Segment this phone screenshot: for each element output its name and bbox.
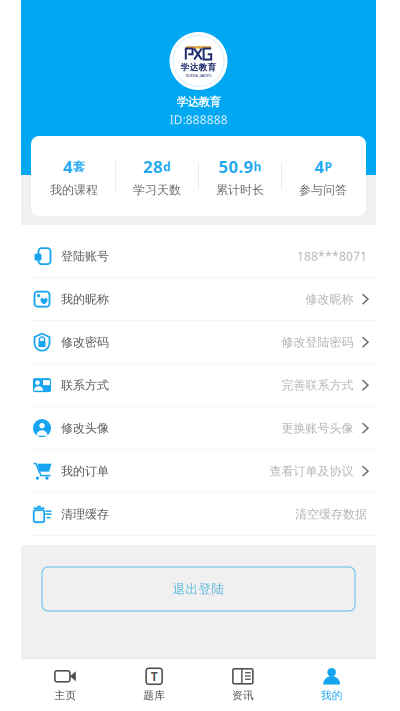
staticText: 套 <box>73 159 85 174</box>
staticText: 修改头像 <box>61 421 109 436</box>
staticText: P <box>324 158 331 175</box>
staticText: 清空缓存数据 <box>295 507 367 522</box>
button[interactable]: 主页 <box>21 659 110 711</box>
staticText: T <box>151 668 158 684</box>
button[interactable]: 修改头像 <box>21 407 376 450</box>
staticText: 登陆账号 <box>61 249 109 264</box>
button[interactable]: T <box>110 659 199 711</box>
staticText: 学习天数 <box>133 182 181 197</box>
staticText: 我的订单 <box>61 464 109 479</box>
staticText: XUEDA JIAOYU <box>185 73 211 78</box>
staticText: 修改密码 <box>61 335 109 350</box>
staticText: 188***8071 <box>297 248 367 264</box>
staticText: 修改登陆密码 <box>281 335 353 350</box>
staticText: 更换账号头像 <box>281 421 353 436</box>
staticText: 50.9 <box>218 155 253 178</box>
staticText: 我的课程 <box>50 182 98 197</box>
staticText: d <box>163 158 171 175</box>
staticText: 28 <box>143 155 163 178</box>
staticText: 4 <box>314 155 324 178</box>
staticText: 查看订单及协议 <box>269 464 353 479</box>
staticText: 我的昵称 <box>61 292 109 307</box>
staticText: 题库 <box>143 689 165 702</box>
button[interactable]: 我的 <box>287 659 376 711</box>
button[interactable]: 我的订单 <box>21 450 376 493</box>
button[interactable]: 联系方式 <box>21 364 376 407</box>
staticText: 学达教育 <box>180 62 216 73</box>
staticText: 修改昵称 <box>305 292 353 307</box>
staticText: 清理缓存 <box>61 507 109 522</box>
staticText: 累计时长 <box>216 182 264 197</box>
staticText: 4 <box>63 155 73 178</box>
button[interactable]: 修改密码 <box>21 321 376 364</box>
staticText: 退出登陆 <box>172 581 224 597</box>
staticText: 我的 <box>321 689 343 702</box>
button[interactable]: 登陆账号 <box>21 235 376 278</box>
staticText: h <box>253 158 261 175</box>
staticText: ID:888888 <box>169 111 227 128</box>
button[interactable]: 退出登陆 <box>42 567 355 611</box>
button[interactable]: 我的昵称 <box>21 278 376 321</box>
staticText: 学达教育 <box>176 95 220 109</box>
staticText: 主页 <box>54 689 76 702</box>
staticText: 参与问答 <box>299 182 347 197</box>
staticText: 完善联系方式 <box>281 378 353 393</box>
button[interactable]: 资讯 <box>198 659 287 711</box>
staticText: 联系方式 <box>61 378 109 393</box>
staticText: 资讯 <box>232 689 254 702</box>
button[interactable]: 清理缓存 <box>21 493 376 536</box>
